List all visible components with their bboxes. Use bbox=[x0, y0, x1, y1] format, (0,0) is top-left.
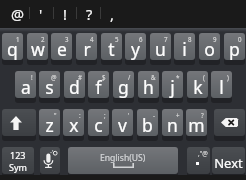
staticText: f bbox=[95, 75, 102, 98]
staticText: * bbox=[176, 73, 180, 81]
staticText: @ bbox=[11, 4, 25, 24]
staticText: h bbox=[143, 75, 154, 98]
staticText: 5 bbox=[115, 35, 119, 43]
staticText: ' bbox=[39, 4, 43, 24]
staticText: Sym bbox=[9, 161, 27, 173]
button[interactable]: s bbox=[39, 71, 60, 98]
button[interactable]: n bbox=[162, 109, 183, 136]
staticText: ( bbox=[203, 73, 205, 81]
button[interactable]: u bbox=[150, 33, 171, 60]
staticText: q bbox=[7, 37, 18, 60]
button[interactable]: f bbox=[88, 71, 109, 98]
staticText: @ bbox=[51, 73, 57, 81]
staticText: ? bbox=[201, 111, 204, 119]
button[interactable]: t bbox=[101, 33, 122, 60]
button[interactable]: Shift bbox=[2, 109, 36, 136]
staticText: z bbox=[45, 113, 54, 136]
staticText: o bbox=[204, 37, 215, 60]
button[interactable]: ' bbox=[29, 0, 53, 28]
staticText: p bbox=[229, 37, 240, 60]
button[interactable]: r bbox=[76, 33, 97, 60]
button[interactable]: o bbox=[199, 33, 220, 60]
staticText: c bbox=[94, 113, 103, 136]
staticText: 7 bbox=[164, 35, 168, 43]
button[interactable]: h bbox=[138, 71, 159, 98]
button[interactable]: l bbox=[211, 71, 232, 98]
button[interactable]: g bbox=[113, 71, 134, 98]
staticText: m bbox=[188, 113, 205, 136]
button[interactable]: English(US) bbox=[68, 147, 178, 174]
button[interactable]: q bbox=[2, 33, 23, 60]
staticText: 2 bbox=[41, 35, 45, 43]
button[interactable]: Symbols bbox=[2, 147, 34, 174]
staticText: & bbox=[151, 73, 156, 81]
staticText: ) bbox=[227, 73, 229, 81]
button[interactable]: Backspace bbox=[214, 109, 245, 136]
staticText: l bbox=[219, 75, 224, 98]
button[interactable]: b bbox=[137, 109, 158, 136]
staticText: : bbox=[79, 111, 81, 119]
button[interactable]: Punctuation bbox=[187, 147, 210, 174]
button[interactable]: y bbox=[125, 33, 146, 60]
staticText: - bbox=[153, 111, 155, 119]
staticText: + bbox=[176, 111, 180, 119]
staticText: 123 bbox=[10, 149, 26, 161]
staticText: 8 bbox=[188, 35, 192, 43]
button[interactable]: ! bbox=[53, 0, 77, 28]
staticText: ' bbox=[128, 111, 130, 119]
button[interactable]: ? bbox=[77, 0, 101, 28]
staticText: / bbox=[128, 73, 131, 81]
button[interactable]: k bbox=[187, 71, 208, 98]
staticText: i bbox=[182, 37, 187, 60]
button[interactable]: d bbox=[64, 71, 85, 98]
staticText: t bbox=[108, 37, 115, 60]
button[interactable]: , bbox=[100, 0, 124, 28]
staticText: Next bbox=[214, 154, 243, 172]
staticText: e bbox=[57, 37, 67, 60]
staticText: j bbox=[170, 75, 175, 98]
staticText: d bbox=[69, 75, 80, 98]
button[interactable]: z bbox=[39, 109, 60, 136]
staticText: n bbox=[167, 113, 178, 136]
button[interactable]: j bbox=[162, 71, 183, 98]
staticText: ! bbox=[31, 73, 33, 81]
staticText: g bbox=[118, 75, 129, 98]
staticText: # bbox=[78, 73, 82, 81]
button[interactable]: m bbox=[186, 109, 207, 136]
button[interactable]: x bbox=[63, 109, 84, 136]
staticText: v bbox=[118, 113, 127, 136]
staticText: k bbox=[193, 75, 203, 98]
staticText: 9 bbox=[213, 35, 217, 43]
staticText: " bbox=[54, 111, 57, 119]
staticText: English(US) bbox=[100, 152, 146, 164]
staticText: b bbox=[142, 113, 153, 136]
button[interactable]: c bbox=[88, 109, 109, 136]
staticText: ? bbox=[86, 4, 93, 24]
staticText: ; bbox=[104, 111, 106, 119]
button[interactable]: Voice input bbox=[40, 147, 60, 174]
staticText: s bbox=[45, 75, 54, 98]
button[interactable]: @ bbox=[6, 0, 30, 28]
staticText: ,"@ bbox=[198, 149, 208, 157]
staticText: $ bbox=[102, 73, 106, 81]
button[interactable]: w bbox=[27, 33, 48, 60]
staticText: , bbox=[110, 4, 114, 24]
button[interactable]: v bbox=[112, 109, 133, 136]
staticText: x bbox=[69, 113, 79, 136]
staticText: 4 bbox=[90, 35, 94, 43]
button[interactable]: Next bbox=[212, 147, 245, 174]
button[interactable]: a bbox=[15, 71, 36, 98]
staticText: 3 bbox=[65, 35, 69, 43]
staticText: y bbox=[131, 37, 140, 60]
button[interactable]: e bbox=[51, 33, 72, 60]
staticText: 0 bbox=[238, 35, 242, 43]
staticText: 6 bbox=[139, 35, 143, 43]
staticText: r bbox=[83, 37, 91, 60]
staticText: ! bbox=[63, 4, 67, 24]
button[interactable]: i bbox=[174, 33, 195, 60]
staticText: u bbox=[155, 37, 166, 60]
staticText: w bbox=[31, 37, 45, 60]
staticText: 1 bbox=[16, 35, 20, 43]
staticText: a bbox=[21, 75, 31, 98]
button[interactable]: p bbox=[224, 33, 245, 60]
